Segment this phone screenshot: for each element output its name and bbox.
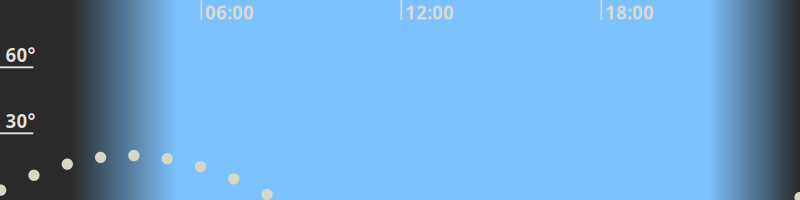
staticText: 60°	[6, 42, 36, 67]
staticText: 18:00	[605, 0, 654, 25]
staticText: 30°	[6, 108, 36, 133]
staticText: 12:00	[405, 0, 454, 25]
staticText: 06:00	[205, 0, 254, 25]
button[interactable]: Sun path chart	[0, 0, 800, 200]
